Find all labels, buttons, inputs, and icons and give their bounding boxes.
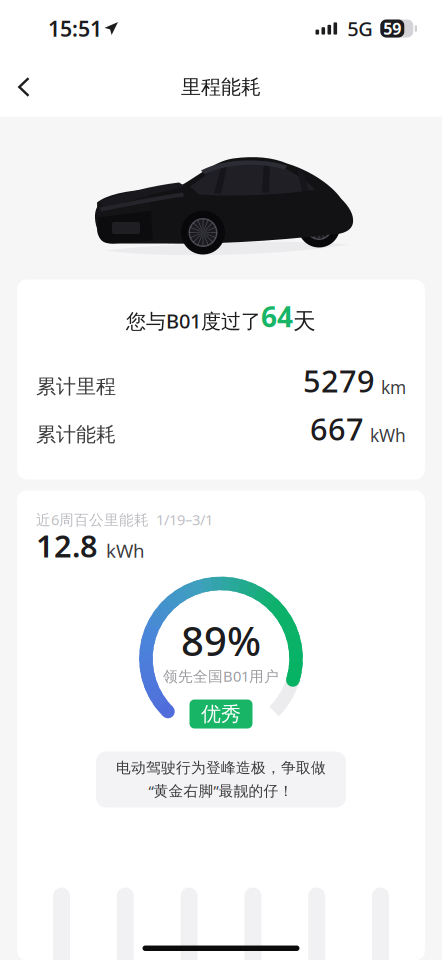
staticText: 累计里程 (36, 374, 116, 399)
button[interactable]: 优秀 (189, 699, 252, 728)
staticText: 667 (310, 408, 364, 449)
staticText: kWh (106, 538, 145, 563)
staticText: “黄金右脚”最靓的仔！ (148, 781, 293, 800)
staticText: km (381, 376, 406, 399)
staticText: 优秀 (201, 702, 241, 726)
staticText: 您与B01度过了 (126, 307, 261, 334)
staticText: 近6周百公里能耗 (36, 510, 149, 529)
staticText: 里程能耗 (181, 75, 261, 99)
staticText: kWh (370, 424, 406, 447)
staticText: 天 (293, 307, 316, 335)
staticText: 5G (347, 15, 373, 42)
staticText: 领先全国B01用户 (163, 666, 279, 686)
staticText: 1/19–3/1 (156, 510, 213, 529)
button[interactable]: Back (0, 62, 48, 112)
staticText: 64 (261, 298, 293, 335)
staticText: 累计能耗 (36, 422, 116, 447)
staticText: 5279 (303, 360, 375, 401)
staticText: 12.8 (36, 525, 98, 566)
staticText: 59 (383, 18, 401, 39)
staticText: 电动驾驶行为登峰造极，争取做 (116, 759, 326, 777)
staticText: 89% (181, 614, 261, 667)
staticText: 15:51 (48, 14, 102, 43)
